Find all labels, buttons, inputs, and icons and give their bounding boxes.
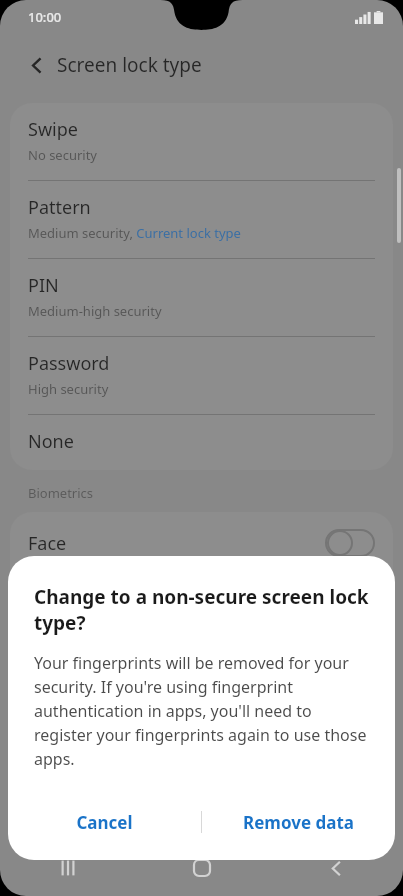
staticText: Biometrics: [28, 484, 94, 502]
button[interactable]: Swipe: [10, 103, 393, 180]
staticText: Screen lock type: [57, 52, 202, 78]
staticText: PIN: [28, 273, 59, 298]
button[interactable]: Face: [10, 512, 393, 574]
staticText: Swipe: [28, 117, 78, 142]
button[interactable]: PIN: [10, 259, 393, 336]
staticText: 10:00: [28, 8, 62, 26]
staticText: Medium security, Current lock type: [28, 224, 241, 242]
button[interactable]: Back: [269, 840, 403, 896]
staticText: None: [28, 429, 74, 454]
button[interactable]: Pattern: [10, 181, 393, 258]
staticText: No security: [28, 146, 98, 164]
staticText: Medium-high security: [28, 302, 162, 320]
staticText: Password: [28, 351, 110, 376]
button[interactable]: [10, 575, 393, 637]
staticText: Cancel: [76, 811, 133, 834]
staticText: Pattern: [28, 195, 91, 220]
staticText: Change to a non-secure screen lock type?: [34, 584, 369, 636]
staticText: Face: [28, 531, 325, 556]
staticText: Remove data: [243, 811, 354, 834]
button[interactable]: Cancel: [8, 796, 201, 848]
button[interactable]: Recents: [0, 840, 135, 896]
button[interactable]: Back: [18, 46, 56, 84]
button[interactable]: Home: [135, 840, 269, 896]
button[interactable]: None: [10, 415, 393, 470]
button[interactable]: Password: [10, 337, 393, 414]
button[interactable]: Remove data: [202, 796, 395, 848]
staticText: Your fingerprints will be removed for yo…: [34, 652, 369, 770]
staticText: High security: [28, 380, 109, 398]
